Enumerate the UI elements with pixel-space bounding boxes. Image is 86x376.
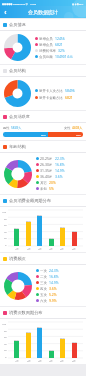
staticText: 1月 — [15, 247, 19, 250]
button[interactable]: 其它 — [36, 180, 83, 185]
staticText: 4月 — [49, 359, 53, 362]
button[interactable]: 新开卡人次占比 — [35, 88, 83, 93]
staticText: 20% — [49, 180, 56, 185]
staticText: 三次 — [40, 281, 47, 285]
button[interactable]: 六次 — [36, 298, 83, 303]
staticText: 3月 — [38, 359, 42, 362]
staticText: 58496 — [65, 88, 75, 93]
staticText: 60% — [14, 338, 19, 341]
staticText: 44% — [76, 133, 81, 136]
staticText: 6821 — [55, 42, 63, 47]
staticText: 0 — [5, 355, 7, 358]
staticText: 24.3% — [49, 268, 59, 273]
staticText: 会员活跃度 — [9, 114, 30, 119]
staticText: 42% — [72, 229, 77, 232]
button[interactable]: 会员结构 — [0, 65, 86, 76]
staticText: 4403人 — [72, 126, 83, 130]
staticText: 31-35岁 — [40, 168, 53, 173]
staticText: 56% — [60, 336, 65, 339]
staticText: 会员结构 — [9, 68, 26, 73]
staticText: 88% — [37, 325, 42, 328]
staticText: 未知 — [40, 187, 47, 191]
staticText: 一次 — [40, 269, 47, 273]
staticText: 新增会员 — [39, 37, 53, 41]
staticText: 80 — [4, 329, 7, 332]
button[interactable]: 会员活跃度 — [0, 111, 86, 122]
staticText: 104901.6元 — [55, 54, 73, 59]
button[interactable]: 消费频次 — [0, 253, 86, 264]
staticText: 男性 — [3, 126, 10, 130]
staticText: 新开卡人次占比 — [39, 89, 63, 93]
staticText: 四次 — [40, 287, 47, 291]
staticText: 20% — [49, 236, 54, 239]
staticText: 3.6% — [49, 286, 57, 291]
staticText: 60 — [4, 335, 7, 338]
staticText: 新增会员 — [39, 43, 53, 47]
staticText: 12456 — [55, 36, 65, 41]
staticText: 0 — [5, 243, 7, 246]
staticText: 女性 — [64, 126, 71, 130]
staticText: 40 — [4, 342, 7, 345]
staticText: 60 — [4, 223, 7, 226]
staticText: 16.8% — [55, 162, 65, 167]
staticText: 56% — [41, 133, 46, 136]
button[interactable]: 一次 — [36, 268, 83, 273]
staticText: 2月 — [27, 359, 31, 362]
staticText: 5月 — [60, 359, 64, 362]
staticText: 60% — [14, 226, 19, 229]
staticText: 42% — [72, 340, 77, 343]
staticText: 20 — [4, 348, 7, 351]
staticText: 年龄结构 — [9, 144, 26, 149]
staticText: ●●●●● Palaphone 中 10:36 — [2, 2, 37, 5]
staticText: 6月 — [72, 359, 76, 362]
staticText: 6月 — [72, 247, 76, 250]
button[interactable]: 31-35岁 — [36, 168, 83, 173]
button[interactable]: 未知 — [36, 186, 83, 191]
button[interactable]: 五次 — [36, 292, 83, 297]
staticText: 消费频次 — [9, 256, 26, 261]
staticText: 5% — [49, 186, 54, 191]
staticText: 16.8% — [49, 274, 59, 279]
staticText: 其它 — [40, 181, 47, 185]
staticText: 六次 — [40, 299, 47, 303]
staticText: 五次 — [40, 293, 47, 297]
staticText: 5月 — [60, 247, 64, 250]
staticText: 新开卡金额占比 — [39, 96, 63, 100]
staticText: 32% — [58, 48, 65, 53]
staticText: 26-30岁 — [40, 162, 53, 167]
button[interactable]: 56% — [3, 132, 83, 137]
staticText: 100 — [2, 210, 7, 213]
button[interactable]: 新增会员 — [35, 42, 83, 47]
staticText: 80 — [4, 217, 7, 220]
staticText: 会员情况 — [9, 22, 26, 27]
staticText: 2月 — [27, 247, 31, 250]
staticText: 20 — [4, 236, 7, 239]
staticText: 9.9% — [49, 298, 57, 303]
button[interactable]: 新开卡金额占比 — [35, 95, 83, 100]
staticText: 6821 — [65, 95, 73, 100]
button[interactable]: 新增会员 — [35, 36, 83, 41]
staticText: 会员消费金额周期分布 — [9, 198, 51, 203]
staticText: 3.6% — [55, 174, 63, 179]
button[interactable]: 会员消费金额周期分布 — [0, 195, 86, 206]
staticText: 40 — [4, 230, 7, 233]
staticText: 14.9% — [55, 168, 65, 173]
button[interactable]: 36-40岁 — [36, 174, 83, 179]
button[interactable]: 会员总额 — [35, 54, 83, 59]
button[interactable]: 消费转化率 — [35, 48, 83, 53]
button[interactable]: Back — [0, 6, 11, 18]
button[interactable]: 年龄结构 — [0, 141, 86, 152]
staticText: 56% — [60, 225, 65, 228]
button[interactable]: 消费次数周期分布 — [0, 307, 86, 318]
button[interactable]: 四次 — [36, 286, 83, 291]
button[interactable]: 20-25岁 — [36, 156, 83, 161]
staticText: 4月 — [49, 247, 53, 250]
button[interactable]: 会员情况 — [0, 19, 86, 30]
staticText: 会员总额 — [39, 55, 53, 59]
button[interactable]: 26-30岁 — [36, 162, 83, 167]
staticText: 二次 — [40, 275, 47, 279]
button[interactable]: 二次 — [36, 274, 83, 279]
button[interactable]: 三次 — [36, 280, 83, 285]
staticText: 1月 — [15, 359, 19, 362]
staticText: 80% — [26, 330, 31, 333]
